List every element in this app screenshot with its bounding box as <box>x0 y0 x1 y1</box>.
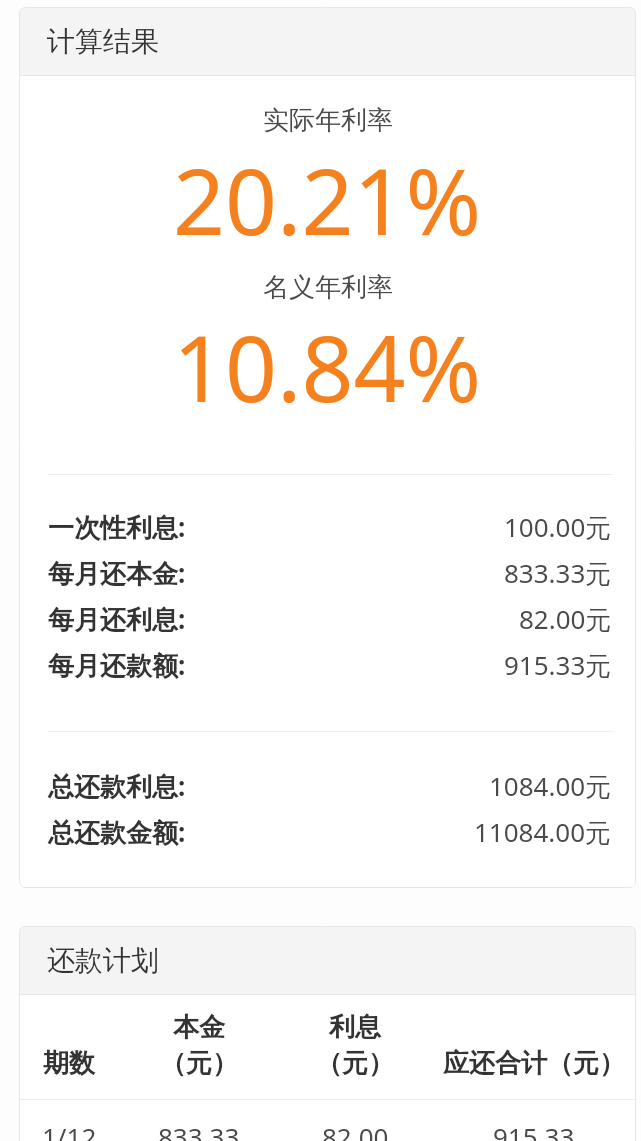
staticText: 每月还款额: <box>48 647 186 683</box>
staticText: 10.84% <box>173 305 482 415</box>
staticText: 20.21% <box>173 138 482 248</box>
staticText: 每月还本金: <box>48 555 186 591</box>
staticText: 期数 <box>43 1047 95 1080</box>
button[interactable]: 总还款金额: <box>19 809 636 855</box>
staticText: 100.00元 <box>504 509 612 545</box>
button[interactable]: 每月还利息: <box>19 596 636 642</box>
button[interactable]: 总还款利息: <box>19 763 636 809</box>
staticText: 总还款利息: <box>48 768 186 804</box>
staticText: 计算结果 <box>47 24 159 59</box>
staticText: 915.33元 <box>504 647 612 683</box>
staticText: 11084.00元 <box>474 814 612 850</box>
button[interactable]: 计算结果 <box>19 7 636 75</box>
staticText: 还款计划 <box>47 943 159 978</box>
staticText: 应还合计（元） <box>443 1047 625 1080</box>
button[interactable]: 还款计划 <box>19 926 636 994</box>
staticText: 1084.00元 <box>489 768 612 804</box>
staticText: 每月还利息: <box>48 601 186 637</box>
staticText: 利息 （元） <box>316 1011 394 1080</box>
staticText: 1/12 <box>42 1119 97 1141</box>
staticText: 82.00元 <box>519 601 612 637</box>
staticText: 915.33 <box>493 1119 575 1141</box>
button[interactable]: 1/12 <box>19 1100 636 1141</box>
staticText: 名义年利率 <box>263 271 393 304</box>
staticText: 833.33元 <box>504 555 612 591</box>
button[interactable]: 每月还款额: <box>19 642 636 688</box>
staticText: 实际年利率 <box>263 104 393 137</box>
staticText: 833.33 <box>158 1119 240 1141</box>
staticText: 总还款金额: <box>48 814 186 850</box>
staticText: 一次性利息: <box>48 509 186 545</box>
staticText: 本金 （元） <box>160 1011 238 1080</box>
staticText: 82.00 <box>322 1119 389 1141</box>
button[interactable]: 一次性利息: <box>19 504 636 550</box>
button[interactable]: 每月还本金: <box>19 550 636 596</box>
